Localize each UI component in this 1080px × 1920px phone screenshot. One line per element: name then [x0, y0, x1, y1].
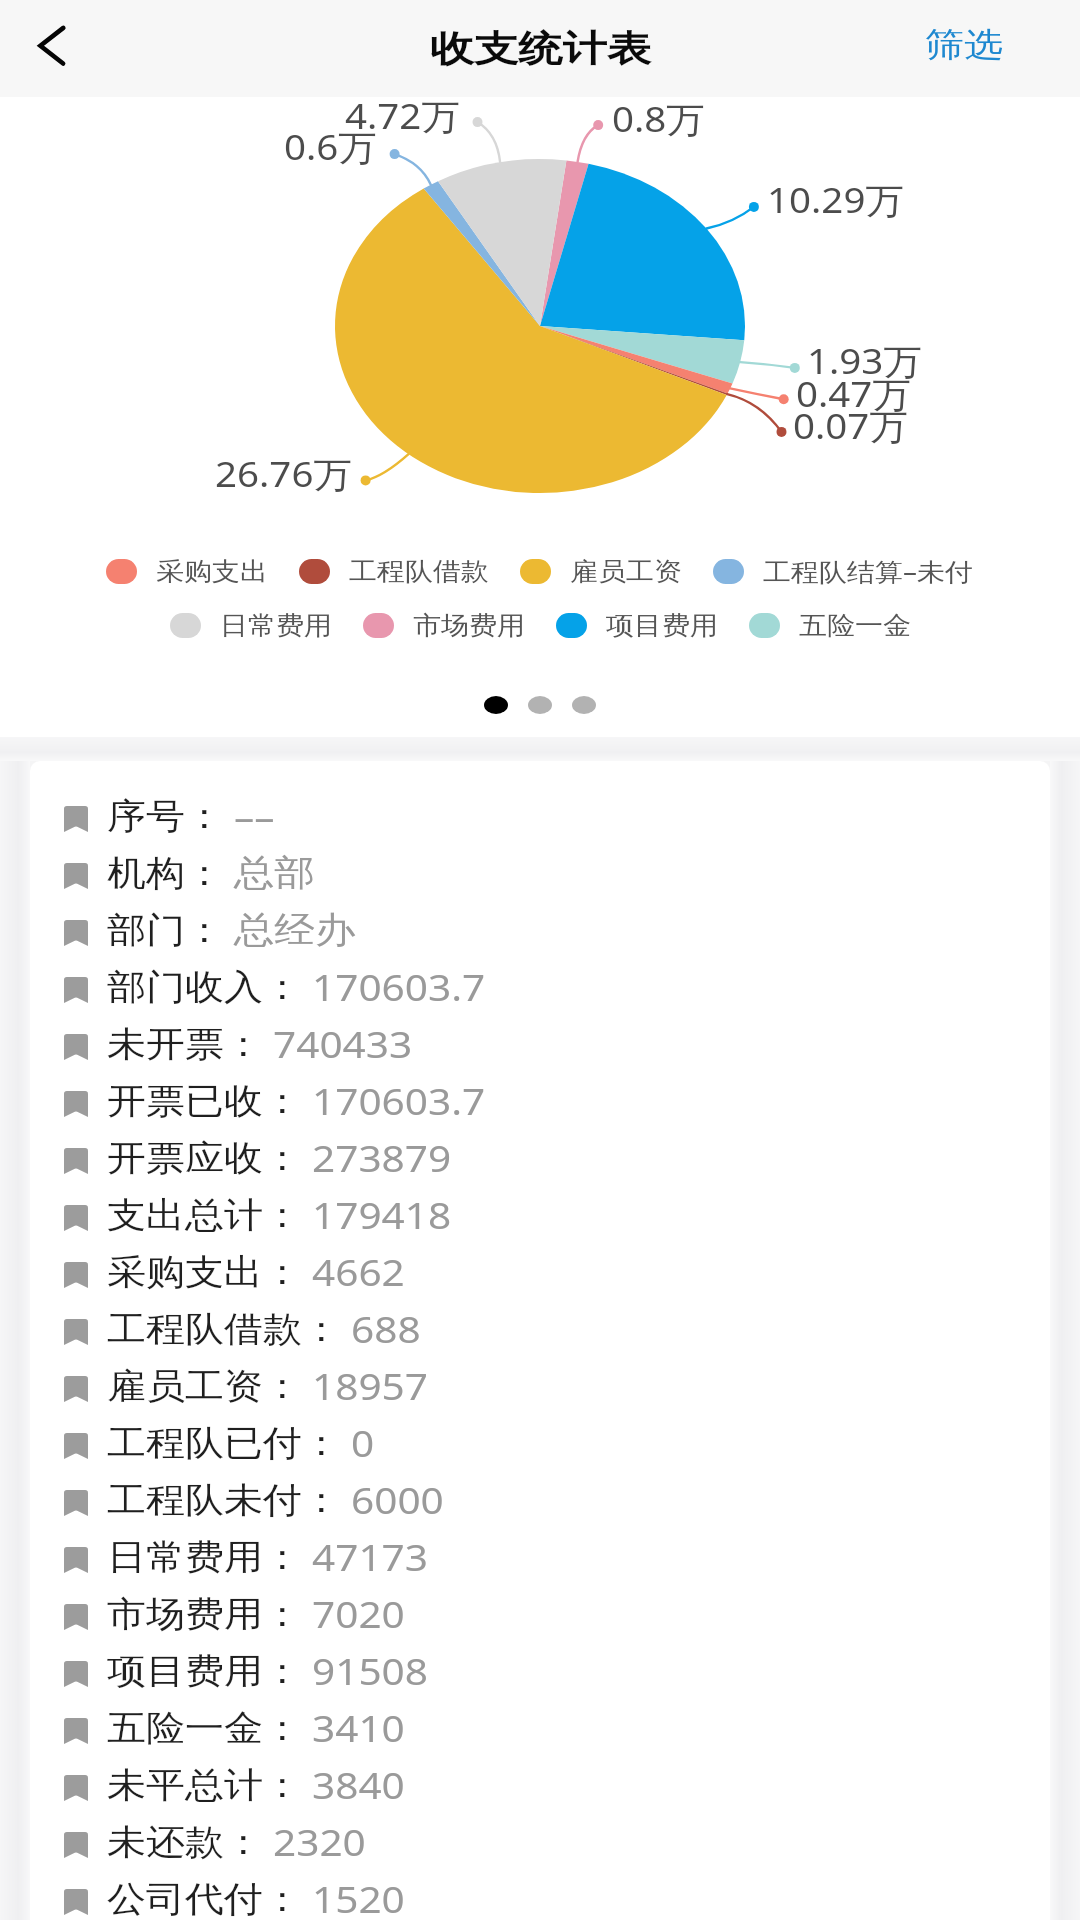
staticText: 170603.7: [312, 1076, 486, 1125]
staticText: 部门：: [107, 907, 224, 952]
button[interactable]: 雇员工资：: [64, 1360, 1050, 1417]
staticText: 6000: [351, 1475, 445, 1524]
staticText: 部门收入：: [107, 964, 302, 1009]
staticText: 26.76万: [215, 450, 352, 498]
staticText: 工程队结算–未付: [763, 554, 974, 588]
button[interactable]: 部门收入：: [64, 961, 1050, 1018]
button[interactable]: 项目费用：: [64, 1645, 1050, 1702]
staticText: 开票已收：: [107, 1078, 302, 1122]
button[interactable]: 筛选: [925, 0, 1003, 97]
staticText: 47173: [312, 1532, 428, 1581]
button[interactable]: 市场费用：: [64, 1588, 1050, 1645]
staticText: 总部: [234, 850, 315, 895]
staticText: 筛选: [925, 24, 1003, 65]
staticText: 未开票：: [107, 1021, 263, 1066]
staticText: 采购支出：: [107, 1249, 302, 1293]
staticText: 1.93万: [807, 337, 922, 385]
button[interactable]: 未开票：: [64, 1018, 1050, 1075]
button[interactable]: 日常费用：: [64, 1531, 1050, 1588]
staticText: 市场费用：: [107, 1591, 302, 1635]
button[interactable]: 开票已收：: [64, 1075, 1050, 1132]
staticText: 740433: [273, 1019, 412, 1068]
staticText: 18957: [312, 1361, 428, 1410]
staticText: 工程队未付：: [107, 1477, 341, 1521]
staticText: 91508: [312, 1646, 428, 1695]
staticText: 10.29万: [767, 176, 904, 224]
button[interactable]: 开票应收：: [64, 1132, 1050, 1189]
staticText: 公司代付：: [107, 1876, 302, 1920]
staticText: 0: [351, 1418, 375, 1467]
staticText: ––: [234, 791, 276, 840]
button[interactable]: 未平总计：: [64, 1759, 1050, 1816]
button[interactable]: 五险一金：: [64, 1702, 1050, 1759]
staticText: 工程队已付：: [107, 1420, 341, 1464]
staticText: 179418: [312, 1190, 451, 1239]
button[interactable]: 未还款：: [64, 1816, 1050, 1873]
staticText: 0.8万: [612, 95, 705, 143]
button[interactable]: 支出总计：: [64, 1189, 1050, 1246]
staticText: 工程队借款：: [107, 1306, 341, 1350]
staticText: 五险一金：: [107, 1705, 302, 1749]
staticText: 2320: [273, 1817, 367, 1866]
staticText: 未还款：: [107, 1819, 263, 1863]
button[interactable]: 机构：: [64, 847, 1050, 904]
staticText: 日常费用: [220, 610, 332, 641]
staticText: 收支统计表: [430, 26, 651, 72]
staticText: 0.6万: [284, 123, 377, 171]
staticText: 总经办: [234, 907, 356, 952]
staticText: 市场费用: [413, 610, 525, 641]
staticText: 雇员工资：: [107, 1363, 302, 1407]
staticText: 五险一金: [799, 610, 911, 641]
button[interactable]: Back: [0, 0, 108, 97]
staticText: 支出总计：: [107, 1192, 302, 1236]
staticText: 0.07万: [793, 402, 908, 450]
button[interactable]: 工程队已付：: [64, 1417, 1050, 1474]
staticText: 工程队借款: [349, 556, 489, 587]
staticText: 3840: [312, 1760, 406, 1809]
staticText: 1520: [312, 1874, 406, 1920]
button[interactable]: 采购支出：: [64, 1246, 1050, 1303]
staticText: 日常费用：: [107, 1534, 302, 1578]
staticText: 7020: [312, 1589, 406, 1638]
staticText: 雇员工资: [570, 556, 682, 587]
button[interactable]: 工程队借款：: [64, 1303, 1050, 1360]
staticText: 开票应收：: [107, 1135, 302, 1179]
button[interactable]: 部门：: [64, 904, 1050, 961]
staticText: 688: [351, 1304, 421, 1353]
staticText: 170603.7: [312, 962, 486, 1011]
staticText: 4662: [312, 1247, 406, 1296]
button[interactable]: 序号：: [64, 790, 1050, 847]
staticText: 273879: [312, 1133, 451, 1182]
button[interactable]: 工程队未付：: [64, 1474, 1050, 1531]
staticText: 未平总计：: [107, 1762, 302, 1806]
staticText: 3410: [312, 1703, 406, 1752]
button[interactable]: 公司代付：: [64, 1873, 1050, 1920]
staticText: 4.72万: [345, 92, 460, 140]
staticText: 序号：: [107, 793, 224, 838]
staticText: 项目费用: [606, 610, 718, 641]
staticText: 机构：: [107, 850, 224, 895]
staticText: 0.47万: [796, 370, 911, 418]
staticText: 项目费用：: [107, 1648, 302, 1692]
staticText: 采购支出: [156, 556, 268, 587]
